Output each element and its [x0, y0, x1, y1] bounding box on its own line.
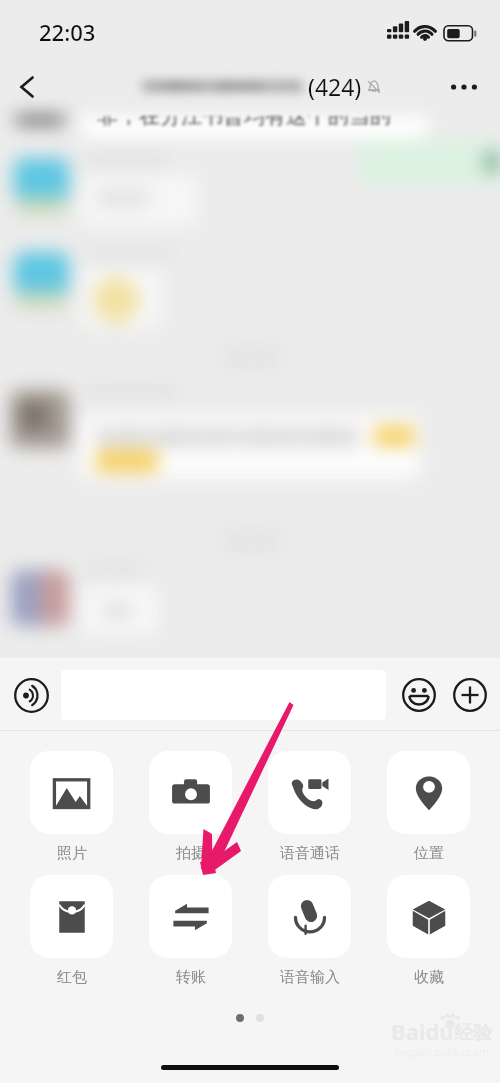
staticText: (424): [308, 71, 362, 102]
staticText: 红包: [57, 968, 87, 987]
button[interactable]: 位置: [387, 751, 470, 863]
staticText: 22:03: [39, 17, 96, 47]
button[interactable]: 语音输入: [268, 875, 351, 987]
button[interactable]: 语音通话: [268, 751, 351, 863]
staticText: 照片: [57, 844, 87, 863]
button[interactable]: 红包: [30, 875, 113, 987]
button[interactable]: 收藏: [387, 875, 470, 987]
staticText: 语音通话: [280, 844, 340, 863]
staticText: 语音输入: [280, 968, 340, 987]
button[interactable]: Back: [0, 57, 56, 116]
button[interactable]: More options: [435, 57, 493, 116]
button[interactable]: 拍摄: [149, 751, 232, 863]
button[interactable]: More actions: [447, 672, 492, 717]
staticText: 拍摄: [176, 844, 206, 863]
staticText: 转账: [176, 968, 206, 987]
staticText: 收藏: [414, 968, 444, 987]
button[interactable]: Voice message: [7, 671, 55, 719]
staticText: 位置: [414, 844, 444, 863]
button[interactable]: 转账: [149, 875, 232, 987]
staticText: 非，在分江书曾均有这个的当的: [97, 103, 391, 129]
staticText: Baidu: [391, 1016, 454, 1046]
button[interactable]: 照片: [30, 751, 113, 863]
button[interactable]: Emoji: [396, 672, 441, 717]
button[interactable]: [61, 670, 386, 720]
staticText: 经验: [454, 1021, 492, 1045]
